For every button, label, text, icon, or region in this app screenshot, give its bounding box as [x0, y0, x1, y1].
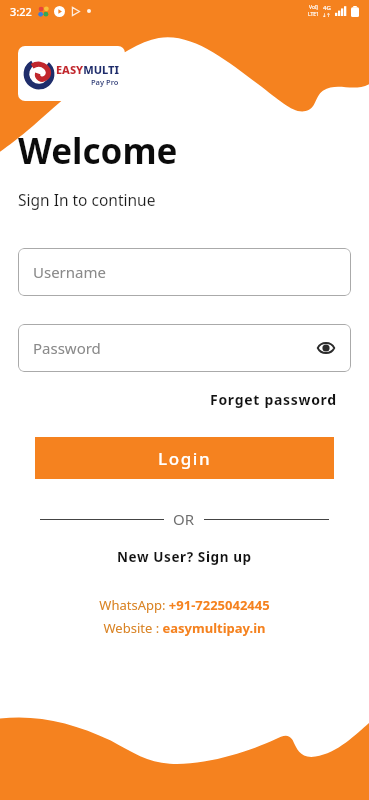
button[interactable]: Login — [35, 437, 334, 479]
staticText: 3:22 — [10, 4, 32, 19]
staticText: New User? Sign up — [117, 548, 252, 566]
staticText: Username — [33, 262, 106, 282]
staticText: Website : easymultipay.in — [0, 619, 369, 637]
button[interactable]: Username — [18, 248, 351, 296]
staticText: ↓↑ — [322, 12, 331, 18]
button[interactable]: Password — [18, 324, 351, 372]
staticText: EASYMULTI — [56, 62, 119, 77]
staticText: LTE1 — [308, 11, 319, 18]
staticText: Password — [33, 338, 101, 358]
button[interactable]: EASYMULTI — [18, 46, 125, 101]
staticText: 4G — [323, 4, 331, 12]
button[interactable]: Forget password — [210, 390, 337, 409]
staticText: VoI) — [309, 4, 319, 11]
staticText: Sign In to continue — [18, 189, 156, 210]
button[interactable]: Show password — [311, 333, 341, 363]
staticText: Forget password — [210, 390, 337, 409]
staticText: Welcome — [18, 127, 178, 175]
staticText: Login — [158, 447, 212, 470]
staticText: Pay Pro — [91, 77, 119, 87]
staticText: WhatsApp: +91-7225042445 — [0, 596, 369, 614]
staticText: OR — [173, 509, 195, 529]
button[interactable]: New User? Sign up — [117, 548, 252, 566]
